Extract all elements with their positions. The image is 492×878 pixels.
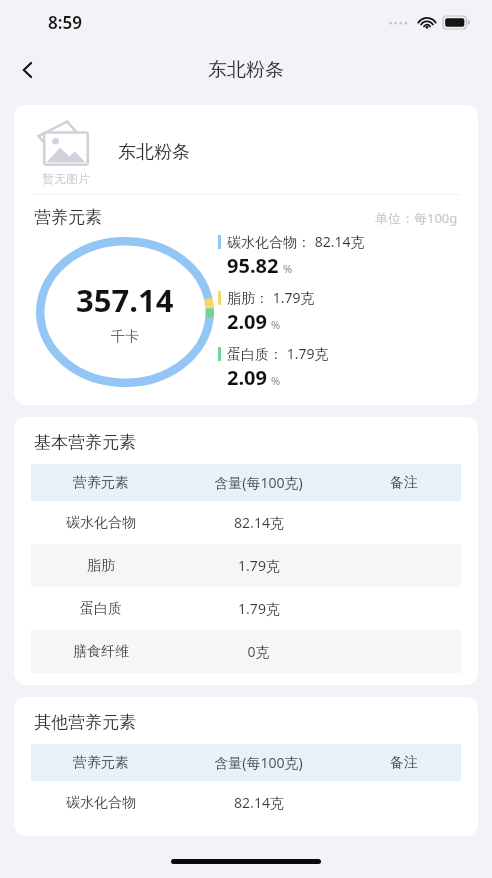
staticText: 碳水化合物： 82.14克 — [227, 232, 365, 251]
staticText: 82.14克 — [234, 793, 284, 812]
staticText: 其他营养元素 — [34, 712, 136, 733]
staticText: 单位：每100g — [375, 209, 458, 227]
button[interactable]: 脂肪 — [31, 544, 461, 587]
staticText: 蛋白质： 1.79克 — [227, 344, 329, 363]
button[interactable]: Back — [6, 48, 50, 92]
staticText: 357.14 — [76, 279, 174, 321]
button[interactable]: 蛋白质 — [31, 587, 461, 630]
staticText: 含量(每100克) — [214, 473, 303, 492]
staticText: % — [283, 261, 293, 276]
staticText: 2.09 — [227, 308, 267, 335]
staticText: 95.82 — [227, 252, 279, 279]
staticText: 暂无图片 — [42, 171, 90, 186]
staticText: 基本营养元素 — [34, 432, 136, 453]
staticText: 备注 — [390, 754, 418, 772]
staticText: 蛋白质 — [80, 600, 122, 618]
staticText: 营养元素 — [73, 474, 129, 492]
staticText: 备注 — [390, 474, 418, 492]
staticText: 营养元素 — [34, 207, 102, 228]
staticText: 碳水化合物 — [66, 514, 136, 532]
staticText: % — [271, 373, 281, 388]
staticText: 东北粉条 — [208, 58, 284, 82]
staticText: 82.14克 — [234, 513, 284, 532]
staticText: % — [271, 317, 281, 332]
staticText: 碳水化合物 — [66, 794, 136, 812]
button[interactable]: 碳水化合物 — [31, 501, 461, 544]
staticText: 营养元素 — [73, 754, 129, 772]
staticText: 膳食纤维 — [73, 643, 129, 661]
staticText: 千卡 — [111, 328, 139, 346]
staticText: 1.79克 — [238, 599, 280, 618]
staticText: 8:59 — [48, 11, 82, 34]
button[interactable]: 膳食纤维 — [31, 630, 461, 673]
staticText: 东北粉条 — [118, 141, 190, 164]
staticText: 2.09 — [227, 364, 267, 391]
staticText: 脂肪： 1.79克 — [227, 288, 315, 307]
staticText: 1.79克 — [238, 556, 280, 575]
staticText: 含量(每100克) — [214, 753, 303, 772]
staticText: 0克 — [247, 642, 270, 661]
staticText: 脂肪 — [87, 557, 115, 575]
button[interactable]: 碳水化合物 — [31, 781, 461, 824]
